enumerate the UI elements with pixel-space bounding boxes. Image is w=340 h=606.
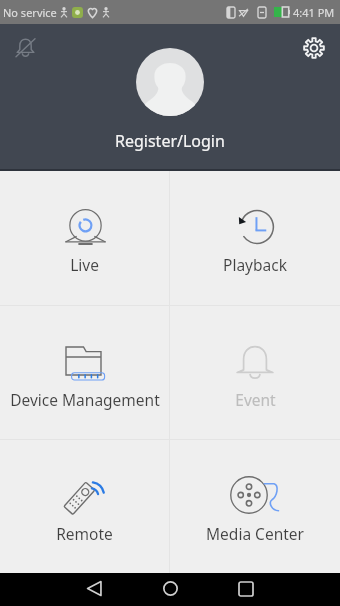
button[interactable]: Recents <box>226 572 266 605</box>
button[interactable]: Device Management <box>0 306 169 439</box>
button[interactable]: Live <box>0 171 169 305</box>
button[interactable]: Notifications off <box>5 28 45 68</box>
staticText: Playback <box>223 254 287 275</box>
staticText: No service <box>3 5 57 20</box>
button[interactable]: Back <box>74 572 114 605</box>
button[interactable]: Home <box>150 572 190 605</box>
staticText: Media Center <box>206 523 304 544</box>
button[interactable]: Playback <box>170 171 340 305</box>
button[interactable]: Event <box>170 306 340 439</box>
staticText: 4:41 PM <box>293 5 335 20</box>
button[interactable]: Settings <box>294 28 334 68</box>
staticText: Event <box>235 389 276 410</box>
button[interactable]: Media Center <box>170 440 340 573</box>
button[interactable]: Register/Login <box>115 48 225 152</box>
staticText: Live <box>70 254 99 275</box>
staticText: Device Management <box>10 389 160 410</box>
button[interactable]: Remote <box>0 440 169 573</box>
staticText: Register/Login <box>115 130 225 152</box>
staticText: Remote <box>56 523 113 544</box>
